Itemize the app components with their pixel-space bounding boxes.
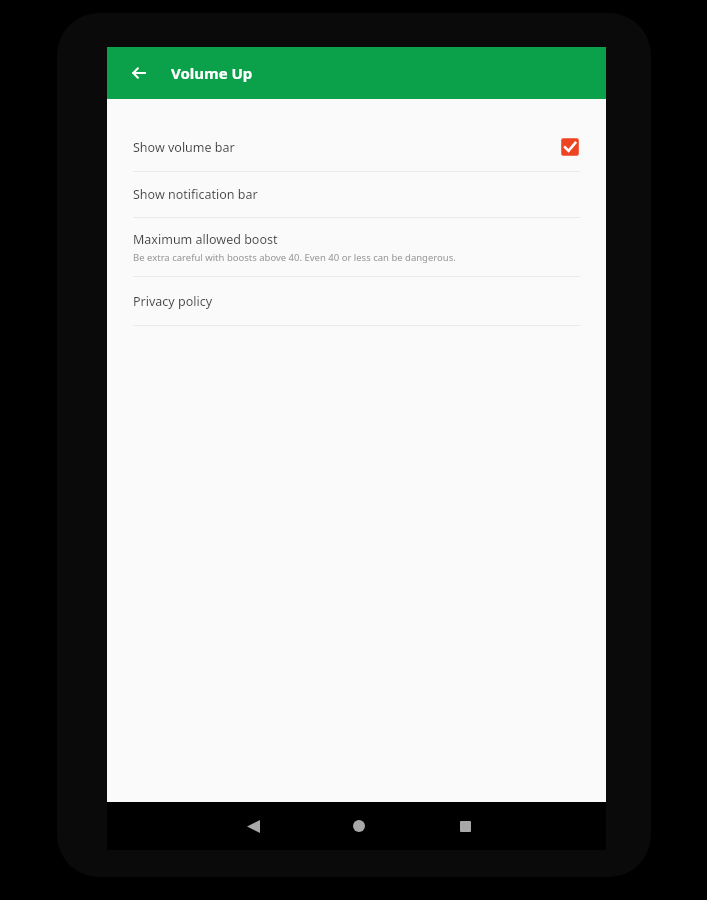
button[interactable]: Back <box>229 802 277 850</box>
staticText: Show notification bar <box>133 186 258 203</box>
button[interactable]: Show volume bar <box>115 123 598 171</box>
other: Show volume bar checkbox <box>560 137 580 157</box>
button[interactable]: Back <box>125 59 153 87</box>
staticText: Show volume bar <box>133 139 235 156</box>
button[interactable]: Maximum allowed boost <box>115 218 598 276</box>
button[interactable]: Recent apps <box>441 802 489 850</box>
button[interactable]: Home <box>335 802 383 850</box>
staticText: Privacy policy <box>133 293 213 310</box>
staticText: Maximum allowed boost <box>133 231 278 248</box>
button[interactable]: Privacy policy <box>115 277 598 325</box>
staticText: Be extra careful with boosts above 40. E… <box>133 251 456 264</box>
staticText: Volume Up <box>171 63 253 83</box>
button[interactable]: Show notification bar <box>115 172 598 217</box>
